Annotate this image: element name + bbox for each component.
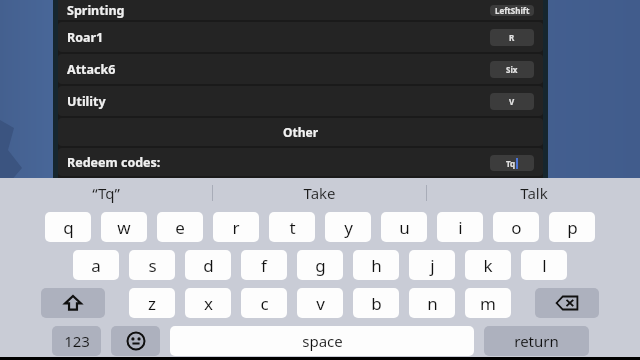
button[interactable]: Emoji	[111, 326, 160, 356]
button[interactable]: Tq	[490, 155, 534, 171]
button[interactable]: v	[297, 288, 343, 318]
button[interactable]: Take	[213, 178, 426, 208]
staticText: j	[430, 254, 435, 277]
button[interactable]: Backspace	[535, 288, 599, 318]
button[interactable]: return	[484, 326, 589, 356]
staticText: 123	[64, 331, 90, 351]
staticText: Take	[303, 183, 336, 203]
staticText: h	[371, 254, 382, 277]
button[interactable]: Redeem codes:	[58, 148, 543, 176]
button[interactable]: c	[241, 288, 287, 318]
staticText: Sprinting	[67, 2, 125, 19]
button[interactable]: m	[465, 288, 511, 318]
staticText: Redeem codes:	[67, 154, 161, 171]
button[interactable]: a	[73, 250, 119, 280]
button[interactable]: space	[170, 326, 474, 356]
button[interactable]: w	[101, 212, 147, 242]
button[interactable]: Sprinting	[58, 0, 543, 20]
button[interactable]: Shift	[41, 288, 105, 318]
staticText: g	[315, 254, 326, 277]
button[interactable]: l	[521, 250, 567, 280]
staticText: Talk	[520, 183, 548, 203]
staticText: c	[260, 292, 269, 315]
staticText: V	[509, 96, 515, 107]
button[interactable]: Attack6	[58, 54, 543, 84]
button[interactable]: V	[490, 93, 534, 110]
button[interactable]: h	[353, 250, 399, 280]
staticText: e	[175, 216, 185, 239]
staticText: o	[511, 216, 522, 239]
staticText: f	[261, 254, 267, 277]
staticText: r	[232, 216, 240, 239]
button[interactable]: y	[325, 212, 371, 242]
staticText: Tq	[506, 158, 516, 169]
button[interactable]: R	[490, 29, 534, 46]
staticText: m	[480, 292, 496, 315]
staticText: d	[203, 254, 214, 277]
button[interactable]: q	[45, 212, 91, 242]
staticText: b	[371, 292, 382, 315]
staticText: u	[399, 216, 410, 239]
staticText: LeftShift	[495, 5, 530, 16]
staticText: Attack6	[67, 61, 116, 78]
staticText: w	[117, 216, 131, 239]
staticText: s	[148, 254, 157, 277]
button[interactable]: Other	[58, 118, 543, 146]
button[interactable]: j	[409, 250, 455, 280]
button[interactable]: e	[157, 212, 203, 242]
staticText: i	[458, 216, 463, 239]
staticText: v	[316, 292, 325, 315]
staticText: x	[204, 292, 213, 315]
button[interactable]: 123	[52, 326, 101, 356]
staticText: p	[567, 216, 578, 239]
button[interactable]: u	[381, 212, 427, 242]
button[interactable]: i	[437, 212, 483, 242]
staticText: Other	[283, 124, 319, 140]
button[interactable]: Roar1	[58, 22, 543, 52]
button[interactable]: LeftShift	[490, 5, 534, 16]
button[interactable]: Utility	[58, 86, 543, 116]
button[interactable]: o	[493, 212, 539, 242]
staticText: a	[91, 254, 101, 277]
button[interactable]: “Tq”	[0, 178, 212, 208]
staticText: R	[509, 32, 515, 43]
button[interactable]: Talk	[427, 178, 640, 208]
staticText: y	[344, 216, 353, 239]
staticText: Six	[506, 64, 518, 75]
button[interactable]: Six	[490, 61, 534, 78]
staticText: return	[514, 331, 559, 351]
staticText: k	[483, 254, 493, 277]
button[interactable]: d	[185, 250, 231, 280]
button[interactable]: p	[549, 212, 595, 242]
button[interactable]: k	[465, 250, 511, 280]
staticText: n	[427, 292, 438, 315]
button[interactable]: n	[409, 288, 455, 318]
staticText: z	[148, 292, 156, 315]
staticText: Utility	[67, 93, 106, 110]
staticText: “Tq”	[92, 183, 120, 203]
staticText: t	[289, 216, 296, 239]
staticText: q	[63, 216, 74, 239]
button[interactable]: r	[213, 212, 259, 242]
staticText: space	[302, 331, 343, 351]
staticText: l	[542, 254, 547, 277]
button[interactable]: g	[297, 250, 343, 280]
button[interactable]: x	[185, 288, 231, 318]
button[interactable]: s	[129, 250, 175, 280]
button[interactable]: f	[241, 250, 287, 280]
button[interactable]: z	[129, 288, 175, 318]
staticText: Roar1	[67, 29, 104, 46]
button[interactable]: b	[353, 288, 399, 318]
button[interactable]: t	[269, 212, 315, 242]
